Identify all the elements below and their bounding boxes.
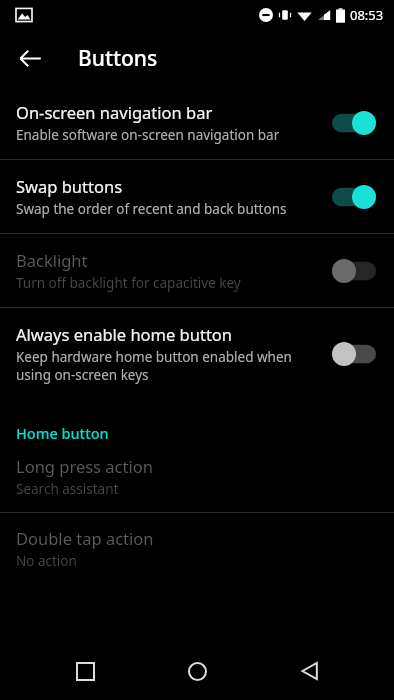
- staticText: Keep hardware home button enabled when u…: [16, 348, 318, 384]
- button[interactable]: On-screen navigation bar: [0, 86, 394, 159]
- button[interactable]: Double tap action: [0, 513, 394, 584]
- staticText: Enable software on-screen navigation bar: [16, 126, 280, 144]
- button[interactable]: Swap buttons: [0, 160, 394, 233]
- staticText: On-screen navigation bar: [16, 101, 213, 123]
- staticText: Search assistant: [16, 480, 119, 498]
- button[interactable]: Backlight: [0, 234, 394, 307]
- staticText: 08:53: [350, 6, 384, 24]
- button[interactable]: Home: [169, 643, 225, 699]
- button[interactable]: Recent apps: [57, 643, 113, 699]
- button[interactable]: Switch on: [328, 179, 380, 215]
- staticText: Turn off backlight for capacitive key: [16, 274, 241, 292]
- staticText: Always enable home button: [16, 323, 233, 345]
- button[interactable]: Always enable home button: [0, 308, 394, 399]
- staticText: Backlight: [16, 249, 88, 271]
- button[interactable]: Switch off: [328, 336, 380, 372]
- staticText: Buttons: [78, 44, 158, 73]
- staticText: Double tap action: [16, 527, 154, 549]
- button[interactable]: Back: [8, 36, 52, 80]
- staticText: Swap buttons: [16, 175, 123, 197]
- staticText: No action: [16, 552, 77, 570]
- staticText: Home button: [16, 423, 109, 443]
- button[interactable]: Switch on: [328, 105, 380, 141]
- staticText: Long press action: [16, 455, 153, 477]
- button[interactable]: Long press action: [0, 447, 394, 512]
- button[interactable]: Switch off: [328, 253, 380, 289]
- staticText: Swap the order of recent and back button…: [16, 200, 287, 218]
- button[interactable]: Back: [282, 643, 338, 699]
